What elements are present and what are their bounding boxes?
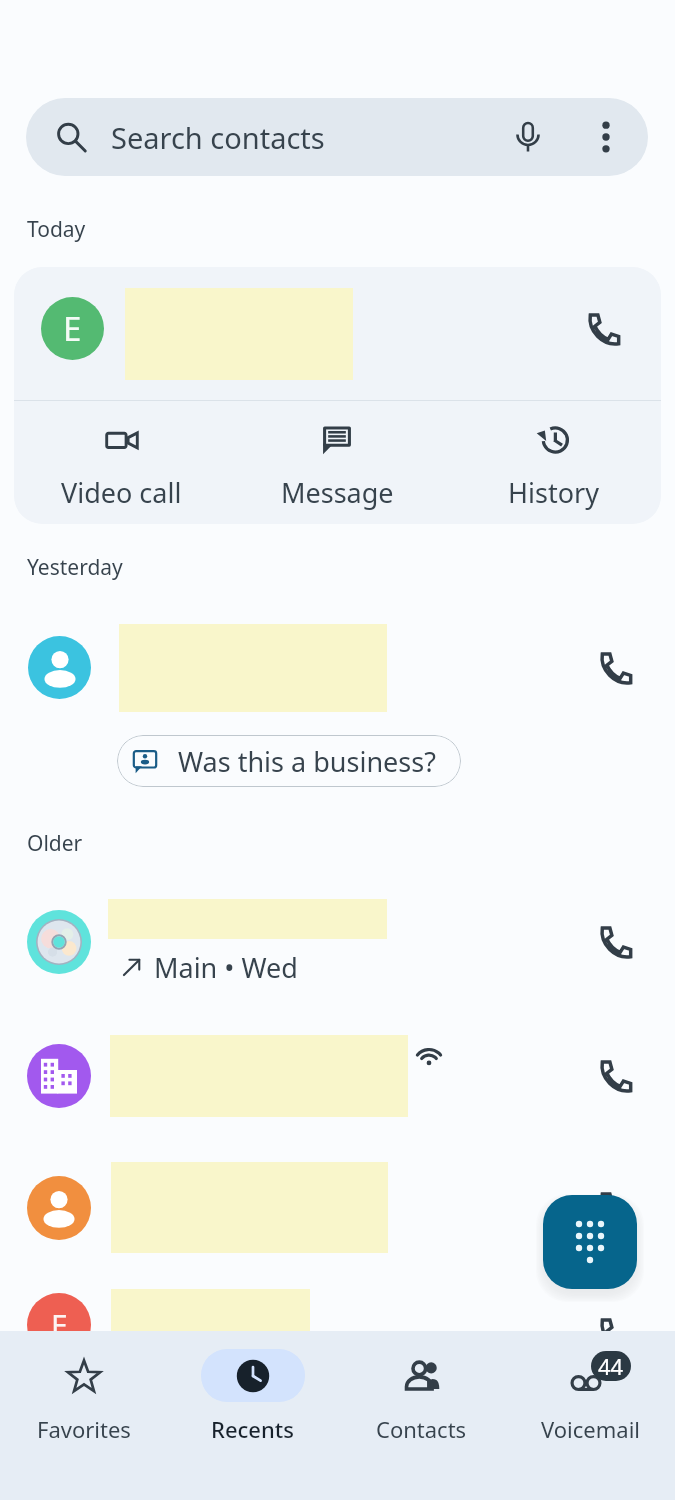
button[interactable]: 44 xyxy=(506,1331,675,1444)
button[interactable]: Call xyxy=(585,1304,645,1364)
staticText: Search contacts xyxy=(111,118,325,157)
button[interactable]: Call xyxy=(0,1013,675,1139)
button[interactable]: Was this a business? xyxy=(117,735,461,787)
button[interactable]: History xyxy=(445,401,661,511)
staticText: Older xyxy=(27,829,83,858)
staticText: Recents xyxy=(211,1414,294,1444)
staticText: 44 xyxy=(598,1351,624,1381)
button[interactable]: Favorites xyxy=(0,1331,168,1444)
staticText: Favorites xyxy=(37,1414,131,1444)
staticText: Contacts xyxy=(376,1414,467,1444)
staticText: Main • Wed xyxy=(154,949,298,986)
staticText: Voicemail xyxy=(541,1414,640,1444)
button[interactable]: E xyxy=(14,267,661,400)
button[interactable]: Main • Wed xyxy=(0,880,675,1004)
staticText: Video call xyxy=(61,474,182,511)
button[interactable]: Call xyxy=(585,638,645,698)
staticText: Was this a business? xyxy=(178,743,436,780)
button[interactable]: Call xyxy=(585,1178,645,1238)
button[interactable]: Recents xyxy=(168,1331,337,1444)
button[interactable]: Call xyxy=(573,299,633,359)
button[interactable]: E xyxy=(0,1265,675,1385)
button[interactable]: Message xyxy=(229,401,445,511)
button[interactable]: Voice search xyxy=(498,107,558,167)
button[interactable]: Video call xyxy=(14,401,229,511)
button[interactable]: Call xyxy=(0,1142,675,1273)
button[interactable]: Call xyxy=(585,912,645,972)
button[interactable]: More options xyxy=(576,107,636,167)
button[interactable]: Call xyxy=(585,1046,645,1106)
staticText: History xyxy=(508,474,599,511)
staticText: E xyxy=(51,1305,68,1346)
button[interactable]: Call xyxy=(0,603,675,732)
button[interactable]: Dialpad xyxy=(543,1195,637,1289)
staticText: E xyxy=(63,306,82,351)
staticText: Yesterday xyxy=(27,553,123,582)
button[interactable]: Contacts xyxy=(337,1331,506,1444)
staticText: Today xyxy=(27,215,86,244)
button[interactable]: Search contacts xyxy=(26,98,648,176)
staticText: Message xyxy=(281,474,394,511)
